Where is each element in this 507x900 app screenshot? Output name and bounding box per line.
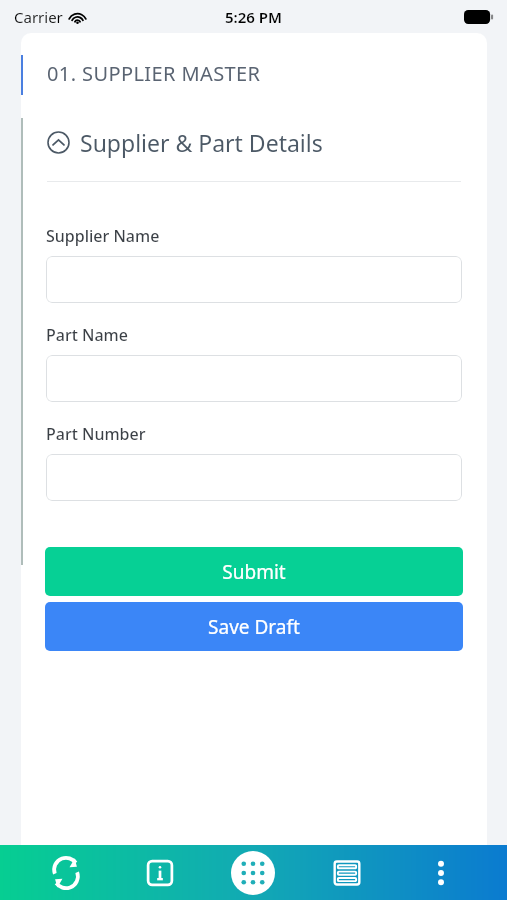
staticText: Supplier & Part Details	[80, 127, 323, 158]
button[interactable]: More options	[413, 845, 469, 900]
staticText: Save Draft	[208, 614, 300, 640]
button[interactable]: Sync	[38, 845, 94, 900]
button[interactable]	[46, 256, 462, 303]
button[interactable]: Information	[132, 845, 188, 900]
other: Collapse section	[47, 131, 70, 154]
button[interactable]: Save Draft	[45, 602, 463, 651]
staticText: 5:26 PM	[225, 7, 282, 27]
staticText: Submit	[222, 559, 286, 585]
staticText: Supplier Name	[46, 225, 160, 247]
staticText: 01. SUPPLIER MASTER	[47, 60, 261, 87]
staticText: Part Number	[46, 423, 146, 445]
button[interactable]	[46, 454, 462, 501]
button[interactable]	[46, 355, 462, 402]
button[interactable]: Collapse section	[21, 125, 487, 160]
button[interactable]: List	[319, 845, 375, 900]
staticText: Part Name	[46, 324, 128, 346]
button[interactable]: Submit	[45, 547, 463, 596]
button[interactable]: Apps	[225, 845, 281, 900]
staticText: Carrier	[14, 7, 63, 27]
